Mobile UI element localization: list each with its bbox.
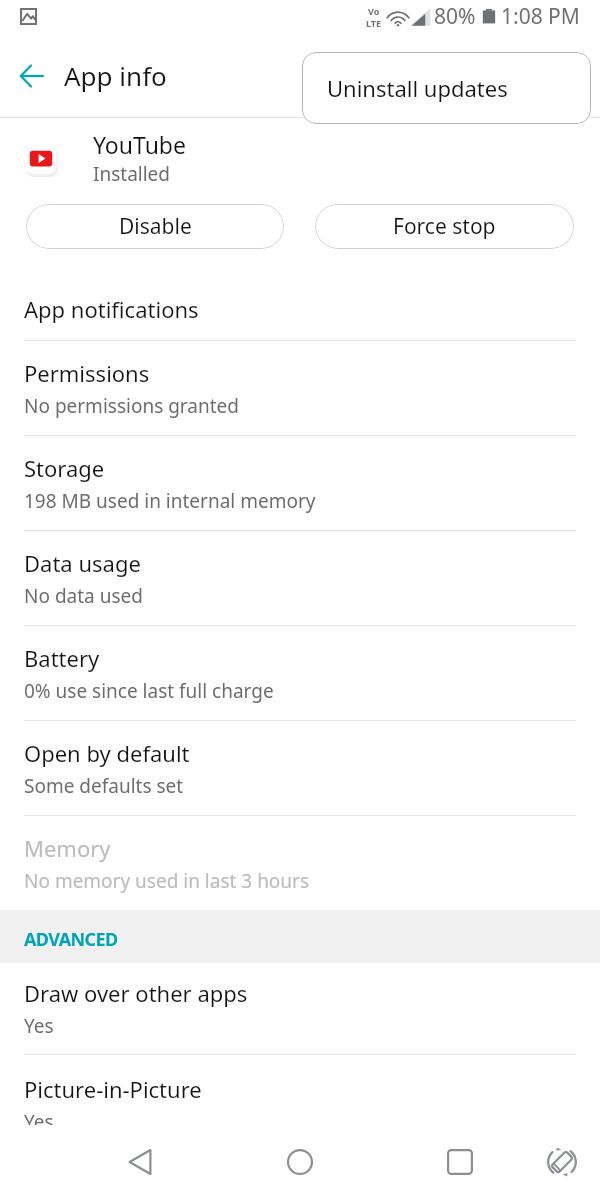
button[interactable]: Data usage [0, 531, 600, 625]
staticText: Yes [24, 1109, 54, 1125]
button[interactable]: Back [110, 1128, 170, 1195]
button[interactable]: Recent apps [430, 1128, 490, 1195]
button[interactable]: Battery [0, 626, 600, 720]
button[interactable]: Storage [0, 436, 600, 530]
button[interactable]: Open by default [0, 721, 600, 815]
staticText: Installed [93, 161, 171, 187]
staticText: Some defaults set [24, 773, 184, 799]
staticText: Vo [368, 5, 380, 17]
button[interactable]: Uninstall updates [302, 52, 591, 124]
button[interactable]: Home [270, 1128, 330, 1195]
button[interactable]: Memory [0, 816, 600, 910]
staticText: 198 MB used in internal memory [24, 488, 316, 514]
staticText: No permissions granted [24, 393, 239, 419]
staticText: 0% use since last full charge [24, 678, 274, 704]
button[interactable]: Picture-in-Picture [0, 1057, 600, 1125]
staticText: Yes [24, 1013, 54, 1039]
staticText: Permissions [24, 358, 150, 388]
staticText: Draw over other apps [24, 978, 248, 1008]
staticText: Disable [119, 212, 192, 241]
staticText: No data used [24, 583, 143, 609]
staticText: YouTube [93, 129, 186, 160]
staticText: Data usage [24, 548, 141, 578]
staticText: Picture-in-Picture [24, 1074, 202, 1104]
staticText: Memory [24, 833, 111, 863]
button[interactable]: Permissions [0, 341, 600, 435]
button[interactable]: Draw over other apps [0, 963, 600, 1054]
staticText: 80% [434, 2, 476, 31]
button[interactable]: App notifications [0, 278, 600, 340]
staticText: 1:08 PM [501, 2, 580, 31]
button[interactable]: Force stop [315, 204, 574, 249]
button[interactable]: YouTube [0, 118, 600, 197]
staticText: Battery [24, 643, 100, 673]
staticText: No memory used in last 3 hours [24, 868, 310, 894]
staticText: App notifications [24, 294, 199, 324]
staticText: LTE [366, 17, 382, 29]
button[interactable]: Rotate screen [532, 1128, 592, 1195]
staticText: App info [64, 58, 167, 93]
staticText: Open by default [24, 738, 190, 768]
staticText: Uninstall updates [327, 73, 508, 103]
staticText: Storage [24, 453, 105, 483]
staticText: ADVANCED [24, 927, 118, 952]
button[interactable]: Disable [26, 204, 284, 249]
staticText: Force stop [393, 212, 496, 241]
button[interactable]: Back [9, 53, 55, 99]
